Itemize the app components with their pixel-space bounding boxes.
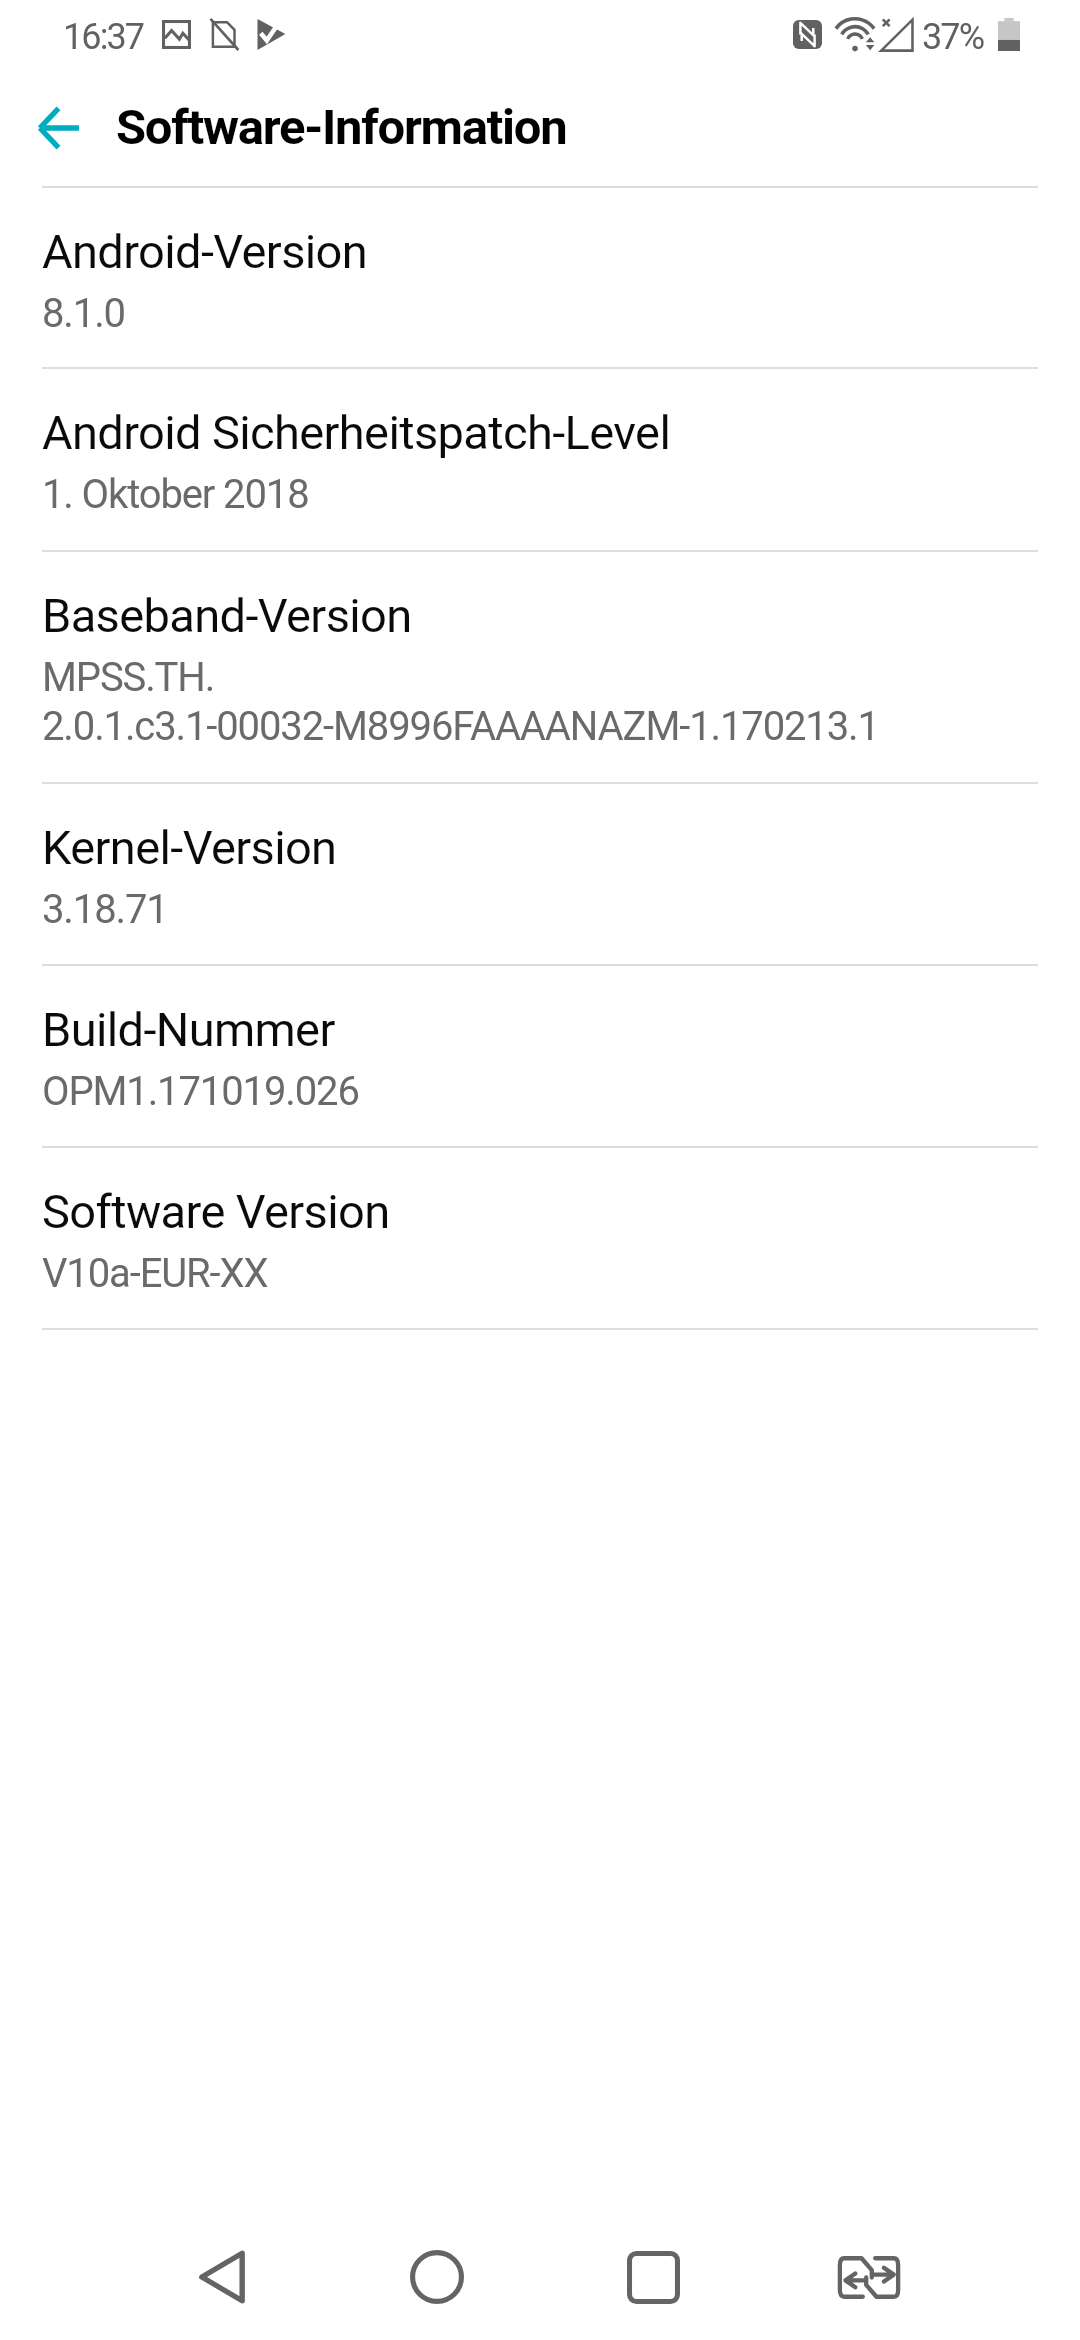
staticText: Android-Version (42, 223, 368, 279)
staticText: Kernel-Version (42, 819, 337, 875)
button[interactable]: Software Version (0, 1148, 1080, 1328)
button[interactable]: Zurück (162, 2217, 282, 2337)
staticText: 1. Oktober 2018 (42, 469, 309, 518)
staticText: Software Version (42, 1183, 390, 1239)
button[interactable]: Android Sicherheitspatch-Level (0, 369, 1080, 550)
staticText: 37% (922, 16, 984, 58)
button[interactable]: Übersicht (593, 2217, 713, 2337)
staticText: Software-Information (116, 99, 567, 156)
button[interactable]: Bildschirm wechseln (809, 2217, 929, 2337)
button[interactable]: Zurück (17, 87, 99, 169)
staticText: OPM1.171019.026 (42, 1066, 359, 1115)
staticText: V10a-EUR-XX (42, 1248, 268, 1297)
staticText: 3.18.71 (42, 884, 168, 933)
staticText: 8.1.0 (42, 288, 125, 337)
staticText: Build-Nummer (42, 1001, 335, 1057)
staticText: Baseband-Version (42, 587, 412, 643)
button[interactable]: Kernel-Version (0, 784, 1080, 964)
button[interactable]: Startbildschirm (377, 2217, 497, 2337)
button[interactable]: Android-Version (0, 188, 1080, 367)
staticText: MPSS.TH. 2.0.1.c3.1-00032-M8996FAAAANAZM… (42, 652, 879, 750)
button[interactable]: Baseband-Version (0, 552, 1080, 782)
staticText: 16:37 (63, 16, 144, 58)
staticText: Android Sicherheitspatch-Level (42, 404, 671, 460)
button[interactable]: Build-Nummer (0, 966, 1080, 1146)
